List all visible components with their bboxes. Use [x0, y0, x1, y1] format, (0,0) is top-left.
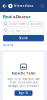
- button[interactable]: Sign In: [14, 90, 32, 96]
- staticText: Near me: [3, 43, 14, 47]
- staticText: Sign in to view your care team, book vis…: [7, 77, 40, 88]
- button[interactable]: Back: [2, 1, 7, 10]
- staticText: Sign In: [18, 91, 28, 95]
- staticText: Find a Doctor: [3, 14, 31, 19]
- button[interactable]: Account: [40, 4, 44, 8]
- staticText: Doctor name or specialty: [8, 22, 41, 26]
- staticText: Search: [19, 36, 28, 40]
- button[interactable]: Near me: [3, 41, 14, 47]
- button[interactable]: Search: [3, 35, 44, 41]
- staticText: Telemedicine: [14, 4, 34, 8]
- staticText: City, state or ZIP: [8, 29, 31, 32]
- staticText: Access the Portal: [11, 72, 35, 75]
